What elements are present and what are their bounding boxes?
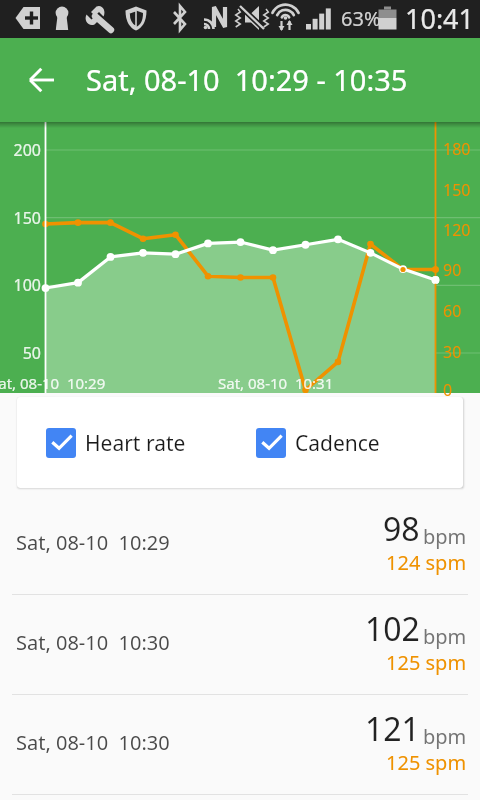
staticText: bpm xyxy=(423,623,467,650)
staticText: 121 xyxy=(365,707,420,751)
button[interactable]: Heart rate xyxy=(46,428,186,458)
staticText: bpm xyxy=(423,523,467,550)
staticText: 10:41 xyxy=(405,0,475,37)
staticText: 120 xyxy=(443,219,471,241)
staticText: Sat, 08-10 10:29 xyxy=(0,373,106,393)
staticText: Sat, 08-10 10:30 xyxy=(16,729,170,756)
staticText: Sat, 08-10 10:29 - 10:35 xyxy=(86,60,408,99)
staticText: 102 xyxy=(365,607,420,651)
staticText: 100 xyxy=(0,274,41,296)
staticText: Cadence xyxy=(295,429,380,458)
staticText: 98 xyxy=(383,507,420,551)
button[interactable]: Sat, 08-10 10:29 xyxy=(0,495,480,595)
staticText: 200 xyxy=(0,139,41,161)
staticText: 125 spm xyxy=(386,749,467,776)
staticText: 30 xyxy=(443,341,462,363)
staticText: Sat, 08-10 10:29 xyxy=(16,529,170,556)
staticText: 150 xyxy=(443,179,471,201)
staticText: Sat, 08-10 10:30 xyxy=(16,629,170,656)
staticText: 90 xyxy=(443,259,462,281)
button[interactable]: Sat, 08-10 10:30 xyxy=(0,695,480,795)
button[interactable]: Cadence xyxy=(256,428,380,458)
button[interactable]: Sat, 08-10 10:30 xyxy=(0,595,480,695)
staticText: 124 spm xyxy=(386,549,467,576)
staticText: 63% xyxy=(341,5,381,32)
staticText: 180 xyxy=(443,138,471,160)
staticText: Heart rate xyxy=(85,429,186,458)
staticText: 0 xyxy=(443,379,453,401)
button[interactable]: Back xyxy=(18,56,66,104)
staticText: 125 spm xyxy=(386,649,467,676)
staticText: bpm xyxy=(423,723,467,750)
staticText: 50 xyxy=(0,342,41,364)
staticText: 60 xyxy=(443,300,462,322)
staticText: 150 xyxy=(0,207,41,229)
staticText: Sat, 08-10 10:31 xyxy=(218,373,334,393)
